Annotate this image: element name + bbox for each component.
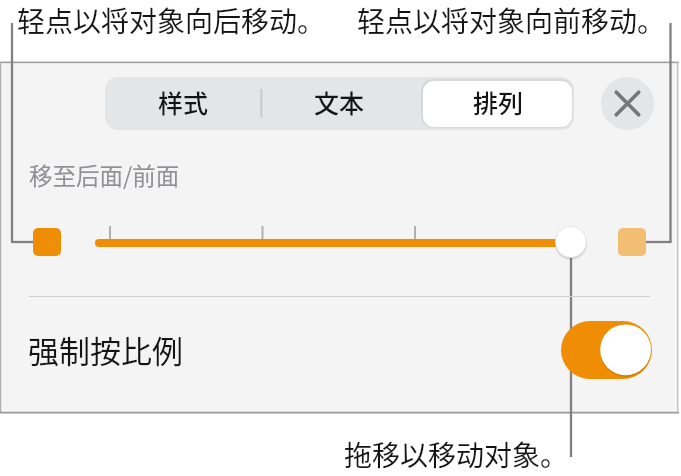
staticText: 强制按比例 (28, 327, 183, 372)
button[interactable]: 文本 (261, 77, 417, 130)
button[interactable]: 向前移动 (618, 228, 646, 256)
button[interactable]: 样式 (105, 77, 261, 130)
staticText: 移至后面/前面 (29, 158, 180, 192)
staticText: 排列 (473, 84, 524, 120)
staticText: 文本 (314, 84, 365, 120)
staticText: 样式 (158, 84, 209, 120)
staticText: 轻点以将对象向前移动。 (357, 0, 666, 41)
button[interactable]: 排列 (417, 77, 573, 130)
button[interactable]: 移至后面或前面滑块 (88, 216, 588, 268)
staticText: 拖移以移动对象。 (344, 434, 569, 475)
staticText: 轻点以将对象向后移动。 (17, 0, 326, 41)
button[interactable]: 关闭 (601, 77, 654, 130)
button[interactable]: 强制按比例开关 (561, 321, 652, 379)
button[interactable]: 向后移动 (33, 228, 61, 256)
